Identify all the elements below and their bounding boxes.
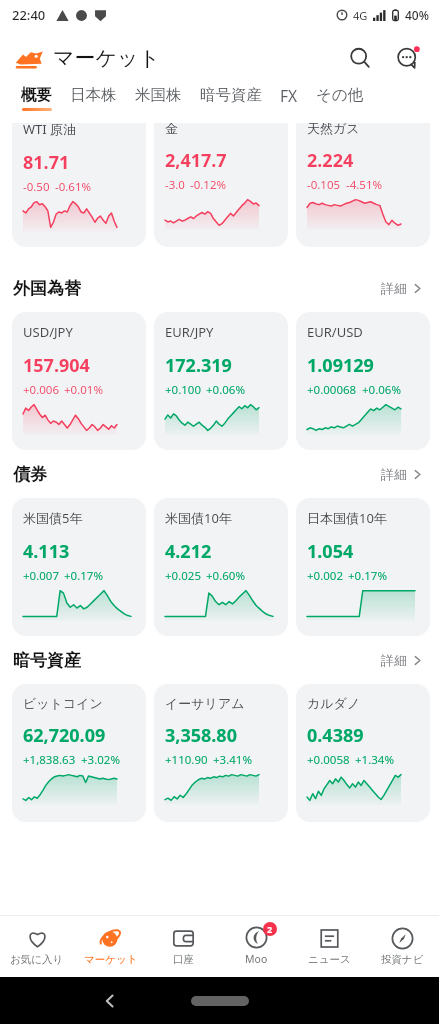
staticText: 金 <box>165 123 178 136</box>
staticText: +0.006 <box>23 382 59 398</box>
staticText: +0.0058 <box>307 752 350 768</box>
staticText: +0.06% <box>206 382 245 398</box>
button[interactable]: ビットコイン <box>12 684 146 822</box>
staticText: 債券 <box>13 464 47 485</box>
button[interactable]: 詳細 <box>378 463 426 485</box>
button[interactable]: マーケット <box>74 915 147 977</box>
button[interactable]: 概要 <box>12 85 61 111</box>
staticText: FX <box>280 85 298 106</box>
button[interactable]: 日本株 <box>61 85 126 108</box>
staticText: ニュース <box>308 953 351 966</box>
staticText: 1.054 <box>307 539 354 564</box>
staticText: その他 <box>316 85 364 105</box>
staticText: -0.50 <box>23 179 50 195</box>
staticText: +0.01% <box>64 382 103 398</box>
staticText: イーサリアム <box>165 695 245 711</box>
staticText: -0.105 <box>307 177 341 193</box>
staticText: 2.224 <box>307 148 354 173</box>
staticText: -0.12% <box>190 177 227 193</box>
button[interactable]: 金 <box>154 123 288 247</box>
button[interactable]: Search <box>343 41 377 75</box>
staticText: +1.34% <box>355 752 394 768</box>
staticText: WTI 原油 <box>23 123 77 138</box>
button[interactable]: FX <box>271 85 307 109</box>
staticText: 81.71 <box>23 150 70 175</box>
staticText: 外国為替 <box>13 278 81 299</box>
staticText: 172.319 <box>165 353 232 378</box>
staticText: 3,358.80 <box>165 723 237 748</box>
staticText: 62,720.09 <box>23 723 106 748</box>
staticText: +0.17% <box>348 568 387 584</box>
staticText: 詳細 <box>381 652 407 668</box>
staticText: 米国債5年 <box>23 509 83 527</box>
staticText: 概要 <box>21 85 52 105</box>
button[interactable]: WTI 原油 <box>12 123 146 247</box>
staticText: +0.007 <box>23 568 59 584</box>
staticText: EUR/JPY <box>165 323 214 341</box>
staticText: 1.09129 <box>307 353 374 378</box>
button[interactable]: その他 <box>307 85 373 108</box>
staticText: +0.002 <box>307 568 343 584</box>
staticText: -3.0 <box>165 177 185 193</box>
staticText: +0.06% <box>362 382 401 398</box>
staticText: Moo <box>245 952 268 966</box>
staticText: +0.60% <box>206 568 245 584</box>
staticText: -0.61% <box>55 179 92 195</box>
staticText: +0.00068 <box>307 382 357 398</box>
staticText: 0.4389 <box>307 723 364 748</box>
button[interactable]: 米国債10年 <box>154 498 288 636</box>
button[interactable]: Messages <box>391 41 425 75</box>
staticText: 口座 <box>173 953 194 966</box>
button[interactable]: お気に入り <box>0 915 74 977</box>
button[interactable]: EUR/JPY <box>154 312 288 450</box>
staticText: 4.212 <box>165 539 212 564</box>
button[interactable]: 日本国債10年 <box>296 498 430 636</box>
button[interactable]: USD/JPY <box>12 312 146 450</box>
staticText: USD/JPY <box>23 323 73 341</box>
staticText: 詳細 <box>381 280 407 296</box>
button[interactable]: 詳細 <box>378 649 426 671</box>
staticText: お気に入り <box>10 953 64 966</box>
staticText: +3.41% <box>213 752 252 768</box>
staticText: 4G <box>353 8 368 23</box>
button[interactable]: 口座 <box>147 915 220 977</box>
staticText: カルダノ <box>307 695 361 711</box>
staticText: -4.51% <box>346 177 383 193</box>
staticText: 詳細 <box>381 466 407 482</box>
staticText: 日本株 <box>70 85 117 105</box>
staticText: +0.17% <box>64 568 103 584</box>
staticText: +110.90 <box>165 752 208 768</box>
button[interactable]: 投資ナビ <box>366 915 439 977</box>
staticText: +0.100 <box>165 382 201 398</box>
staticText: +1,838.63 <box>23 752 76 768</box>
staticText: EUR/USD <box>307 323 363 341</box>
button[interactable]: カルダノ <box>296 684 430 822</box>
staticText: 2,417.7 <box>165 148 227 173</box>
staticText: 暗号資産 <box>13 650 81 671</box>
staticText: ビットコイン <box>23 695 103 711</box>
staticText: 2 <box>267 923 273 935</box>
staticText: +0.025 <box>165 568 201 584</box>
button[interactable]: 米国債5年 <box>12 498 146 636</box>
button[interactable]: EUR/USD <box>296 312 430 450</box>
staticText: マーケット <box>53 45 160 71</box>
button[interactable]: イーサリアム <box>154 684 288 822</box>
button[interactable]: 天然ガス <box>296 123 430 247</box>
staticText: 日本国債10年 <box>307 509 387 527</box>
staticText: 22:40 <box>12 6 46 24</box>
button[interactable]: 2 <box>220 915 293 977</box>
staticText: 暗号資産 <box>200 85 262 105</box>
button[interactable]: 暗号資産 <box>191 85 271 108</box>
staticText: 天然ガス <box>307 123 360 136</box>
staticText: マーケット <box>84 953 138 966</box>
button[interactable]: ニュース <box>293 915 366 977</box>
button[interactable]: 米国株 <box>126 85 191 108</box>
staticText: 4.113 <box>23 539 70 564</box>
staticText: 米国債10年 <box>165 509 232 527</box>
staticText: 40% <box>405 7 429 23</box>
button[interactable]: 詳細 <box>378 277 426 299</box>
staticText: 投資ナビ <box>381 953 424 966</box>
staticText: 157.904 <box>23 353 90 378</box>
staticText: 米国株 <box>135 85 182 105</box>
staticText: +3.02% <box>81 752 120 768</box>
